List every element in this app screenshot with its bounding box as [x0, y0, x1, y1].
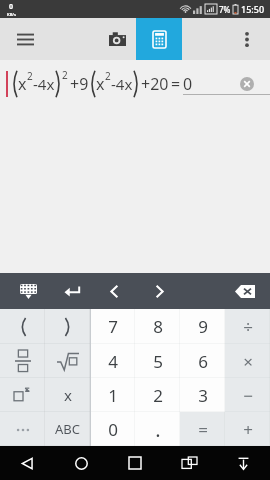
staticText: 7	[108, 315, 118, 338]
button[interactable]: Clear	[236, 73, 258, 95]
button[interactable]: Enter	[54, 273, 90, 309]
button[interactable]: =	[180, 412, 225, 446]
button[interactable]: 0	[91, 412, 135, 446]
staticText: 2	[105, 69, 111, 83]
staticText: -4x	[111, 74, 133, 94]
button[interactable]: Recents	[108, 446, 162, 480]
staticText: 4	[108, 350, 118, 373]
staticText: =	[171, 73, 181, 95]
button[interactable]: 8	[135, 309, 180, 344]
staticText: 5	[153, 350, 163, 373]
staticText: 2	[62, 68, 68, 82]
staticText: 15:50	[241, 3, 265, 15]
button[interactable]: Calculator	[136, 18, 182, 60]
button[interactable]: ABC	[45, 412, 90, 446]
staticText: .	[155, 416, 161, 443]
staticText: +9	[70, 73, 89, 95]
button[interactable]	[45, 344, 90, 378]
staticText: ×	[243, 350, 253, 373]
staticText: x	[96, 73, 105, 95]
staticText: 8	[153, 315, 163, 338]
staticText: 2	[27, 69, 33, 83]
staticText: =	[198, 418, 208, 441]
button[interactable]	[0, 344, 45, 378]
staticText: x	[64, 385, 72, 405]
button[interactable]: 2	[135, 378, 180, 412]
staticText: ABC	[55, 420, 80, 438]
staticText: 6	[198, 350, 208, 373]
button[interactable]: 3	[180, 378, 225, 412]
button[interactable]: 4	[91, 344, 135, 378]
staticText: -4x	[33, 74, 55, 94]
staticText: x	[18, 73, 27, 95]
button[interactable]: Camera	[98, 18, 136, 60]
button[interactable]: 6	[180, 344, 225, 378]
button[interactable]	[0, 309, 45, 344]
button[interactable]: 5	[135, 344, 180, 378]
staticText: KB/s	[7, 12, 16, 17]
button[interactable]: −	[225, 378, 270, 412]
staticText: 0	[183, 73, 193, 95]
staticText: 1	[108, 384, 118, 407]
staticText: 2	[153, 384, 163, 407]
staticText: +20	[141, 73, 169, 95]
button[interactable]: ×	[225, 344, 270, 378]
button[interactable]: Back	[0, 446, 54, 480]
button[interactable]	[0, 412, 45, 446]
button[interactable]: x	[45, 378, 90, 412]
staticText: +	[243, 418, 253, 441]
staticText: 7%	[219, 4, 231, 15]
button[interactable]: .	[135, 412, 180, 446]
button[interactable]: Download	[216, 446, 270, 480]
button[interactable]: Hide keyboard	[10, 273, 46, 309]
button[interactable]: More options	[232, 24, 262, 54]
button[interactable]: Menu	[8, 22, 42, 56]
staticText: −	[243, 384, 253, 407]
staticText: 9	[198, 315, 208, 338]
staticText: 3	[198, 384, 208, 407]
button[interactable]: 7	[91, 309, 135, 344]
button[interactable]: Home	[54, 446, 108, 480]
button[interactable]	[0, 378, 45, 412]
staticText: ÷	[243, 315, 253, 338]
button[interactable]: 1	[91, 378, 135, 412]
staticText: 0	[9, 2, 14, 12]
button[interactable]: +	[225, 412, 270, 446]
button[interactable]	[45, 309, 90, 344]
button[interactable]: Rotate screen	[162, 446, 216, 480]
button[interactable]: 9	[180, 309, 225, 344]
button[interactable]: Backspace	[228, 276, 262, 306]
button[interactable]: ÷	[225, 309, 270, 344]
button[interactable]: Previous	[98, 273, 130, 309]
staticText: 0	[108, 418, 118, 441]
button[interactable]: Next	[143, 273, 175, 309]
